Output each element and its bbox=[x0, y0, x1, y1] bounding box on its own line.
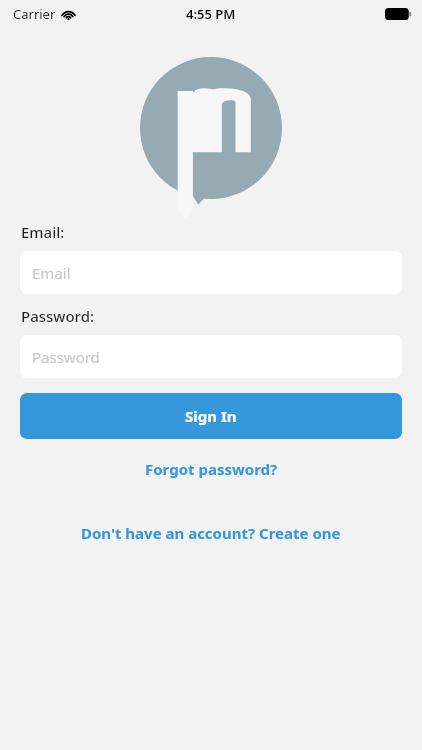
button[interactable]: Email bbox=[20, 251, 402, 294]
staticText: 4:55 PM bbox=[186, 5, 236, 23]
staticText: Password: bbox=[21, 306, 95, 326]
staticText: Email bbox=[32, 263, 71, 283]
staticText: Password bbox=[32, 347, 100, 367]
button[interactable]: Don't have an account? Create one bbox=[0, 517, 422, 549]
button[interactable]: Forgot password? bbox=[0, 453, 422, 485]
staticText: Carrier bbox=[13, 5, 56, 23]
staticText: Don't have an account? Create one bbox=[81, 523, 341, 543]
staticText: Email: bbox=[21, 222, 65, 242]
button[interactable]: Password bbox=[20, 335, 402, 378]
staticText: Forgot password? bbox=[145, 459, 278, 479]
staticText: Sign In bbox=[185, 406, 237, 426]
button[interactable]: Sign In bbox=[20, 393, 402, 439]
